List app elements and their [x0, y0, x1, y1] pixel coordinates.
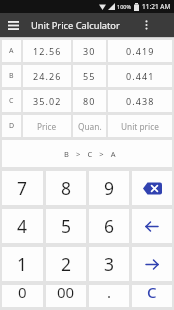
staticText: 6 — [104, 214, 115, 238]
staticText: 2 — [61, 252, 72, 276]
button[interactable] — [0, 13, 27, 37]
button[interactable]: 00 — [46, 285, 86, 307]
staticText: B > C > A — [64, 149, 119, 159]
staticText: 7 — [17, 176, 28, 200]
button[interactable]: 12.56 — [23, 40, 71, 62]
button[interactable]: A — [2, 40, 21, 62]
staticText: 30 — [83, 45, 96, 57]
staticText: 55 — [83, 70, 96, 82]
staticText: 100% — [117, 3, 132, 10]
button[interactable]: C — [132, 285, 172, 307]
button[interactable] — [132, 209, 172, 243]
button[interactable]: 1 — [2, 247, 43, 281]
button[interactable]: 0 — [2, 285, 43, 307]
button[interactable]: 8 — [46, 171, 86, 205]
button[interactable]: 35.02 — [23, 90, 71, 112]
staticText: Unit Price Calculator — [31, 19, 120, 32]
staticText: 00 — [57, 282, 75, 302]
staticText: 8 — [61, 176, 72, 200]
staticText: D — [9, 121, 15, 131]
staticText: Quan. — [78, 121, 102, 132]
staticText: B — [9, 71, 14, 81]
button[interactable]: 9 — [89, 171, 129, 205]
button[interactable] — [135, 13, 157, 37]
button[interactable]: B > C > A — [2, 140, 172, 167]
button[interactable]: C — [2, 90, 21, 112]
staticText: 80 — [83, 95, 96, 107]
button[interactable]: 0.438 — [108, 90, 172, 112]
button[interactable]: 4 — [2, 209, 43, 243]
button[interactable]: 55 — [73, 65, 106, 87]
button[interactable] — [132, 247, 172, 281]
button[interactable]: B — [2, 65, 21, 87]
staticText: C — [147, 282, 157, 302]
button[interactable]: Quan. — [73, 115, 106, 137]
button[interactable] — [132, 171, 172, 205]
button[interactable]: Unit price — [108, 115, 172, 137]
staticText: 4 — [17, 214, 28, 238]
staticText: 0.441 — [126, 70, 155, 82]
staticText: Unit price — [121, 121, 159, 132]
staticText: Price — [37, 121, 57, 132]
staticText: C — [9, 96, 14, 106]
button[interactable]: 2 — [46, 247, 86, 281]
button[interactable]: 80 — [73, 90, 106, 112]
staticText: 0.438 — [126, 95, 155, 107]
button[interactable]: 3 — [89, 247, 129, 281]
button[interactable]: D — [2, 115, 21, 137]
staticText: 0 — [18, 282, 27, 302]
button[interactable]: 7 — [2, 171, 43, 205]
staticText: 24.26 — [33, 70, 62, 82]
staticText: . — [107, 282, 112, 302]
button[interactable]: 0.441 — [108, 65, 172, 87]
button[interactable]: Price — [23, 115, 71, 137]
staticText: 11:21 AM — [142, 2, 171, 11]
staticText: A — [9, 46, 14, 56]
button[interactable]: 30 — [73, 40, 106, 62]
staticText: 5 — [61, 214, 72, 238]
staticText: 0.419 — [126, 45, 155, 57]
staticText: 1 — [17, 252, 28, 276]
staticText: 12.56 — [33, 45, 62, 57]
button[interactable]: 5 — [46, 209, 86, 243]
staticText: 3 — [104, 252, 115, 276]
button[interactable]: 0.419 — [108, 40, 172, 62]
staticText: 35.02 — [33, 95, 62, 107]
button[interactable]: . — [89, 285, 129, 307]
button[interactable]: 24.26 — [23, 65, 71, 87]
staticText: 9 — [104, 176, 115, 200]
button[interactable]: 6 — [89, 209, 129, 243]
